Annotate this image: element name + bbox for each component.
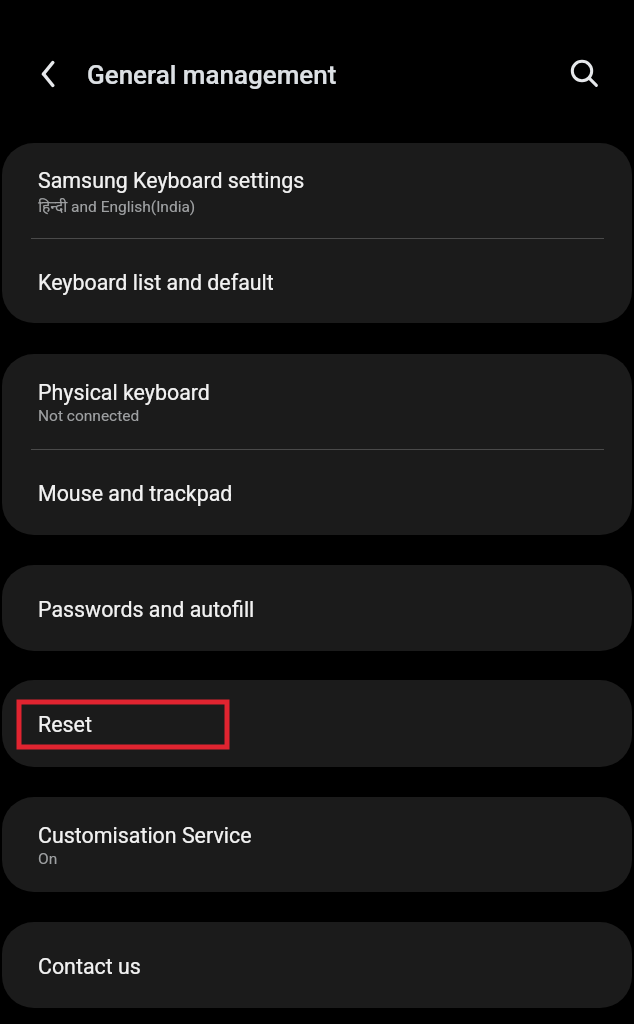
staticText: Not connected (38, 407, 140, 425)
button[interactable]: Customisation Service (2, 797, 632, 892)
staticText: Physical keyboard (38, 380, 210, 405)
button[interactable]: Search (558, 47, 606, 95)
button[interactable]: Samsung Keyboard settings (2, 143, 632, 238)
staticText: Reset (38, 712, 92, 737)
button[interactable]: Keyboard list and default (2, 239, 632, 323)
staticText: Passwords and autofill (38, 597, 255, 622)
staticText: Customisation Service (38, 823, 252, 848)
staticText: Samsung Keyboard settings (38, 168, 305, 193)
staticText: General management (87, 60, 337, 90)
button[interactable]: Mouse and trackpad (2, 450, 632, 535)
button[interactable]: Navigate up (24, 50, 72, 98)
staticText: हिन्दी and English(India) (38, 195, 196, 216)
button[interactable]: Contact us (2, 922, 632, 1008)
staticText: Contact us (38, 954, 141, 979)
button[interactable]: Reset (2, 680, 632, 767)
staticText: Mouse and trackpad (38, 481, 233, 506)
button[interactable]: Passwords and autofill (2, 565, 632, 651)
staticText: On (38, 850, 58, 868)
staticText: Keyboard list and default (38, 270, 274, 295)
button[interactable]: Physical keyboard (2, 354, 632, 449)
